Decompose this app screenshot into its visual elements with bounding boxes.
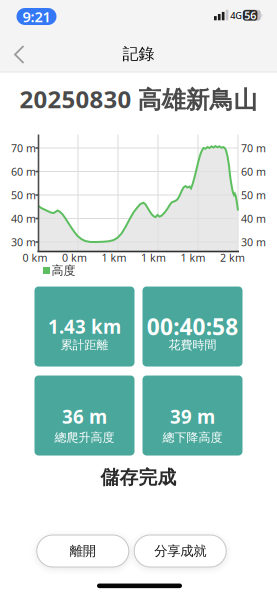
staticText: 30 m [11, 235, 36, 249]
staticText: 40 m [11, 211, 36, 226]
staticText: 1 km [101, 250, 126, 265]
staticText: 50 m [11, 188, 36, 202]
button[interactable]: 分享成就 [134, 535, 226, 567]
staticText: 分享成就 [154, 543, 206, 559]
staticText: 2 km [220, 250, 245, 265]
staticText: 0 km [62, 250, 87, 265]
staticText: 0 km [22, 250, 47, 265]
staticText: 39 m [170, 404, 215, 429]
button[interactable]: 離開 [37, 535, 129, 567]
staticText: 30 m [241, 235, 266, 249]
button[interactable] [10, 43, 36, 66]
staticText: 00:40:58 [147, 311, 238, 341]
staticText: 60 m [11, 164, 36, 179]
staticText: 1 km [180, 250, 205, 265]
staticText: 總下降高度 [162, 430, 222, 445]
staticText: 1 km [141, 250, 166, 265]
staticText: 儲存完成 [100, 466, 176, 489]
staticText: 記錄 [122, 44, 154, 64]
staticText: 36 m [62, 404, 107, 429]
staticText: 60 m [241, 164, 266, 179]
staticText: 4G [230, 9, 242, 21]
staticText: 高度 [51, 263, 75, 278]
staticText: 1.43 km [48, 314, 121, 339]
staticText: 70 m [11, 141, 36, 155]
staticText: 花費時間 [168, 338, 216, 352]
staticText: 累計距離 [60, 338, 108, 352]
staticText: 20250830 高雄新鳥山 [19, 83, 257, 115]
staticText: 56 [244, 8, 256, 22]
staticText: 50 m [241, 188, 266, 202]
staticText: 總爬升高度 [54, 430, 114, 445]
staticText: 9:21 [22, 7, 50, 26]
staticText: 40 m [241, 211, 266, 226]
staticText: 離開 [70, 543, 96, 559]
staticText: 70 m [241, 141, 266, 155]
